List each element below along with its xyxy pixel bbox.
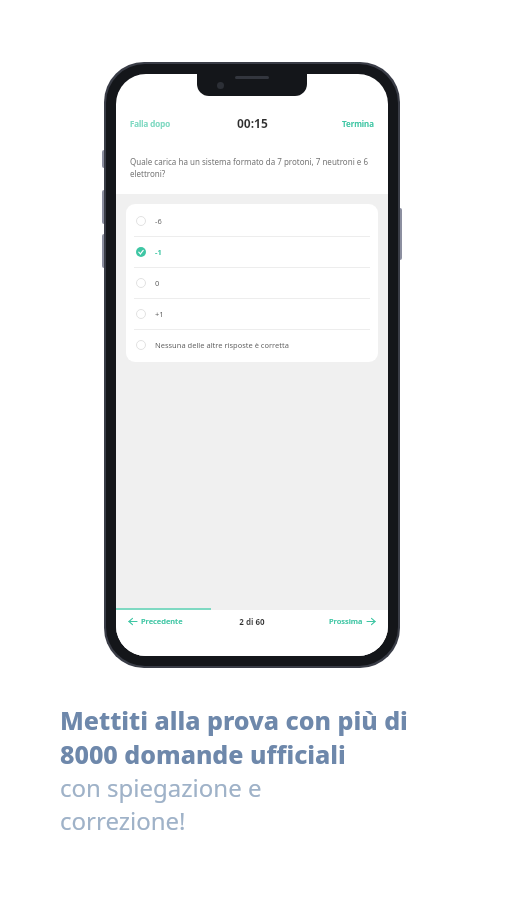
staticText: Mettiti alla prova con più di [60,703,408,737]
staticText: 00:15 [237,115,268,131]
staticText: Nessuna delle altre risposte è corretta [155,340,289,350]
staticText: 8000 domande ufficiali [60,737,346,771]
staticText: 2 di 60 [239,616,265,627]
button[interactable]: Precedente [128,616,210,626]
staticText: -6 [155,216,162,226]
staticText: con spiegazione e [60,771,262,804]
staticText: 0 [155,278,160,288]
staticText: Falla dopo [130,118,171,129]
staticText: Quale carica ha un sistema formato da 7 … [130,156,374,180]
button[interactable]: -1 [126,237,378,267]
staticText: correzione! [60,804,186,837]
button[interactable]: Prossima [293,616,376,626]
staticText: Termina [342,118,374,129]
button[interactable]: Nessuna delle altre risposte è corretta [126,330,378,360]
button[interactable]: -6 [126,206,378,236]
staticText: +1 [155,309,164,319]
staticText: Prossima [329,616,363,626]
button[interactable]: Falla dopo [130,118,212,129]
button[interactable]: 0 [126,268,378,298]
staticText: Precedente [141,616,183,626]
staticText: -1 [155,247,162,257]
button[interactable]: Termina [293,118,374,129]
button[interactable]: +1 [126,299,378,329]
